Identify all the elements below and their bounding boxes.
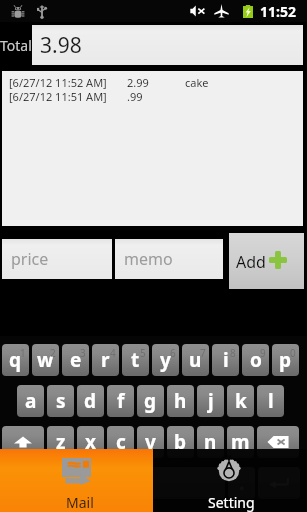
staticText: d xyxy=(84,388,97,414)
button[interactable] xyxy=(77,467,225,499)
staticText: 3.98 xyxy=(40,31,82,60)
staticText: 11:52 xyxy=(260,2,296,21)
staticText: 4 xyxy=(110,346,116,360)
staticText: r xyxy=(101,347,110,373)
staticText: z xyxy=(56,429,66,455)
staticText: j xyxy=(208,388,214,414)
button[interactable]: Mail xyxy=(0,449,153,512)
button[interactable]: . xyxy=(228,467,255,499)
staticText: g xyxy=(144,388,157,414)
button[interactable]: h xyxy=(167,385,194,417)
staticText: cake xyxy=(185,75,209,89)
staticText: Add xyxy=(236,251,266,273)
staticText: 2.99 xyxy=(127,75,149,89)
staticText: p xyxy=(279,347,292,373)
button[interactable]: c xyxy=(107,426,134,458)
staticText: 3 xyxy=(80,346,86,360)
staticText: Total xyxy=(0,36,32,55)
staticText: a xyxy=(25,388,37,414)
staticText: Mail xyxy=(66,493,94,512)
button[interactable]: Add xyxy=(229,233,304,289)
button[interactable]: f xyxy=(107,385,134,417)
button[interactable]: j xyxy=(197,385,224,417)
button[interactable]: [6/27/12 11:52 AM] xyxy=(9,75,307,89)
staticText: price xyxy=(11,248,49,270)
staticText: 6 xyxy=(170,346,176,360)
button[interactable]: a xyxy=(17,385,44,417)
button[interactable]: Setting xyxy=(153,449,307,512)
button[interactable]: e xyxy=(62,344,89,376)
staticText: [6/27/12 11:51 AM] xyxy=(9,89,107,103)
button[interactable]: s xyxy=(47,385,74,417)
staticText: 7 xyxy=(200,346,206,360)
staticText: l xyxy=(268,388,274,414)
staticText: memo xyxy=(124,248,173,270)
staticText: e xyxy=(70,347,82,373)
staticText: 2 xyxy=(50,346,56,360)
staticText: c xyxy=(116,429,126,455)
staticText: Setting xyxy=(208,493,255,512)
button[interactable]: l xyxy=(257,385,284,417)
button[interactable]: [6/27/12 11:51 AM] xyxy=(9,89,307,103)
button[interactable]: p xyxy=(272,344,299,376)
staticText: o xyxy=(250,347,262,373)
button[interactable]: u xyxy=(182,344,209,376)
staticText: h xyxy=(174,388,187,414)
button[interactable]: n xyxy=(197,426,224,458)
staticText: n xyxy=(204,429,217,455)
button[interactable]: i xyxy=(212,344,239,376)
button[interactable]: g xyxy=(137,385,164,417)
staticText: .99 xyxy=(127,89,143,103)
staticText: , xyxy=(58,470,64,496)
staticText: 8 xyxy=(230,346,236,360)
staticText: k xyxy=(235,388,247,414)
staticText: 5 xyxy=(140,346,146,360)
button[interactable]: t xyxy=(122,344,149,376)
staticText: b xyxy=(174,429,187,455)
staticText: [6/27/12 11:52 AM] xyxy=(9,75,107,89)
staticText: t xyxy=(131,347,140,373)
staticText: 1 xyxy=(20,346,26,360)
button[interactable]: z xyxy=(47,426,74,458)
button[interactable]: b xyxy=(167,426,194,458)
staticText: 9 xyxy=(260,346,266,360)
staticText: u xyxy=(189,347,202,373)
button[interactable]: y xyxy=(152,344,179,376)
staticText: 0 xyxy=(290,346,296,360)
button[interactable]: v xyxy=(137,426,164,458)
button[interactable]: ?123 xyxy=(2,467,44,499)
button[interactable]: o xyxy=(242,344,269,376)
staticText: i xyxy=(223,347,229,373)
staticText: y xyxy=(160,347,171,373)
staticText: v xyxy=(145,429,156,455)
staticText: s xyxy=(56,388,66,414)
button[interactable]: d xyxy=(77,385,104,417)
button[interactable]: m xyxy=(227,426,254,458)
button[interactable]: memo xyxy=(115,239,223,279)
button[interactable]: q xyxy=(2,344,29,376)
button[interactable] xyxy=(257,426,299,458)
button[interactable]: price xyxy=(2,239,112,279)
staticText: x xyxy=(85,429,96,455)
button[interactable]: w xyxy=(32,344,59,376)
staticText: f xyxy=(117,388,125,414)
staticText: m xyxy=(231,429,250,455)
staticText: w xyxy=(37,347,54,373)
button[interactable]: k xyxy=(227,385,254,417)
staticText: q xyxy=(9,347,22,373)
button[interactable]: x xyxy=(77,426,104,458)
button[interactable]: r xyxy=(92,344,119,376)
button[interactable] xyxy=(2,426,44,458)
button[interactable]: , xyxy=(47,467,74,499)
